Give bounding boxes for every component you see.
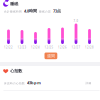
staticText: 12/25 — [45, 46, 54, 49]
staticText: 43bpm — [27, 80, 41, 85]
button[interactable]: 詳細 — [85, 81, 91, 85]
staticText: 12/23 — [18, 46, 27, 49]
staticText: 4.8時間 — [24, 8, 37, 13]
staticText: 週間 — [47, 53, 55, 58]
staticText: 73点 — [53, 8, 61, 13]
staticText: 12/27 — [72, 46, 81, 49]
staticText: 12/24 — [31, 46, 40, 49]
staticText: 心拍数 — [10, 68, 22, 73]
staticText: 休息時の心拍数 — [4, 82, 25, 85]
staticText: 合計睡眠時間 — [4, 10, 22, 13]
staticText: 12/26 — [58, 46, 67, 49]
staticText: 睡眠の質 — [39, 10, 51, 13]
staticText: 睡眠 — [10, 1, 18, 6]
staticText: 7.0 — [73, 19, 78, 23]
staticText: 12/28 — [85, 46, 94, 49]
staticText: 詳細 — [85, 81, 91, 85]
button[interactable]: 週間 — [44, 52, 57, 59]
staticText: 12/22 — [4, 46, 13, 49]
